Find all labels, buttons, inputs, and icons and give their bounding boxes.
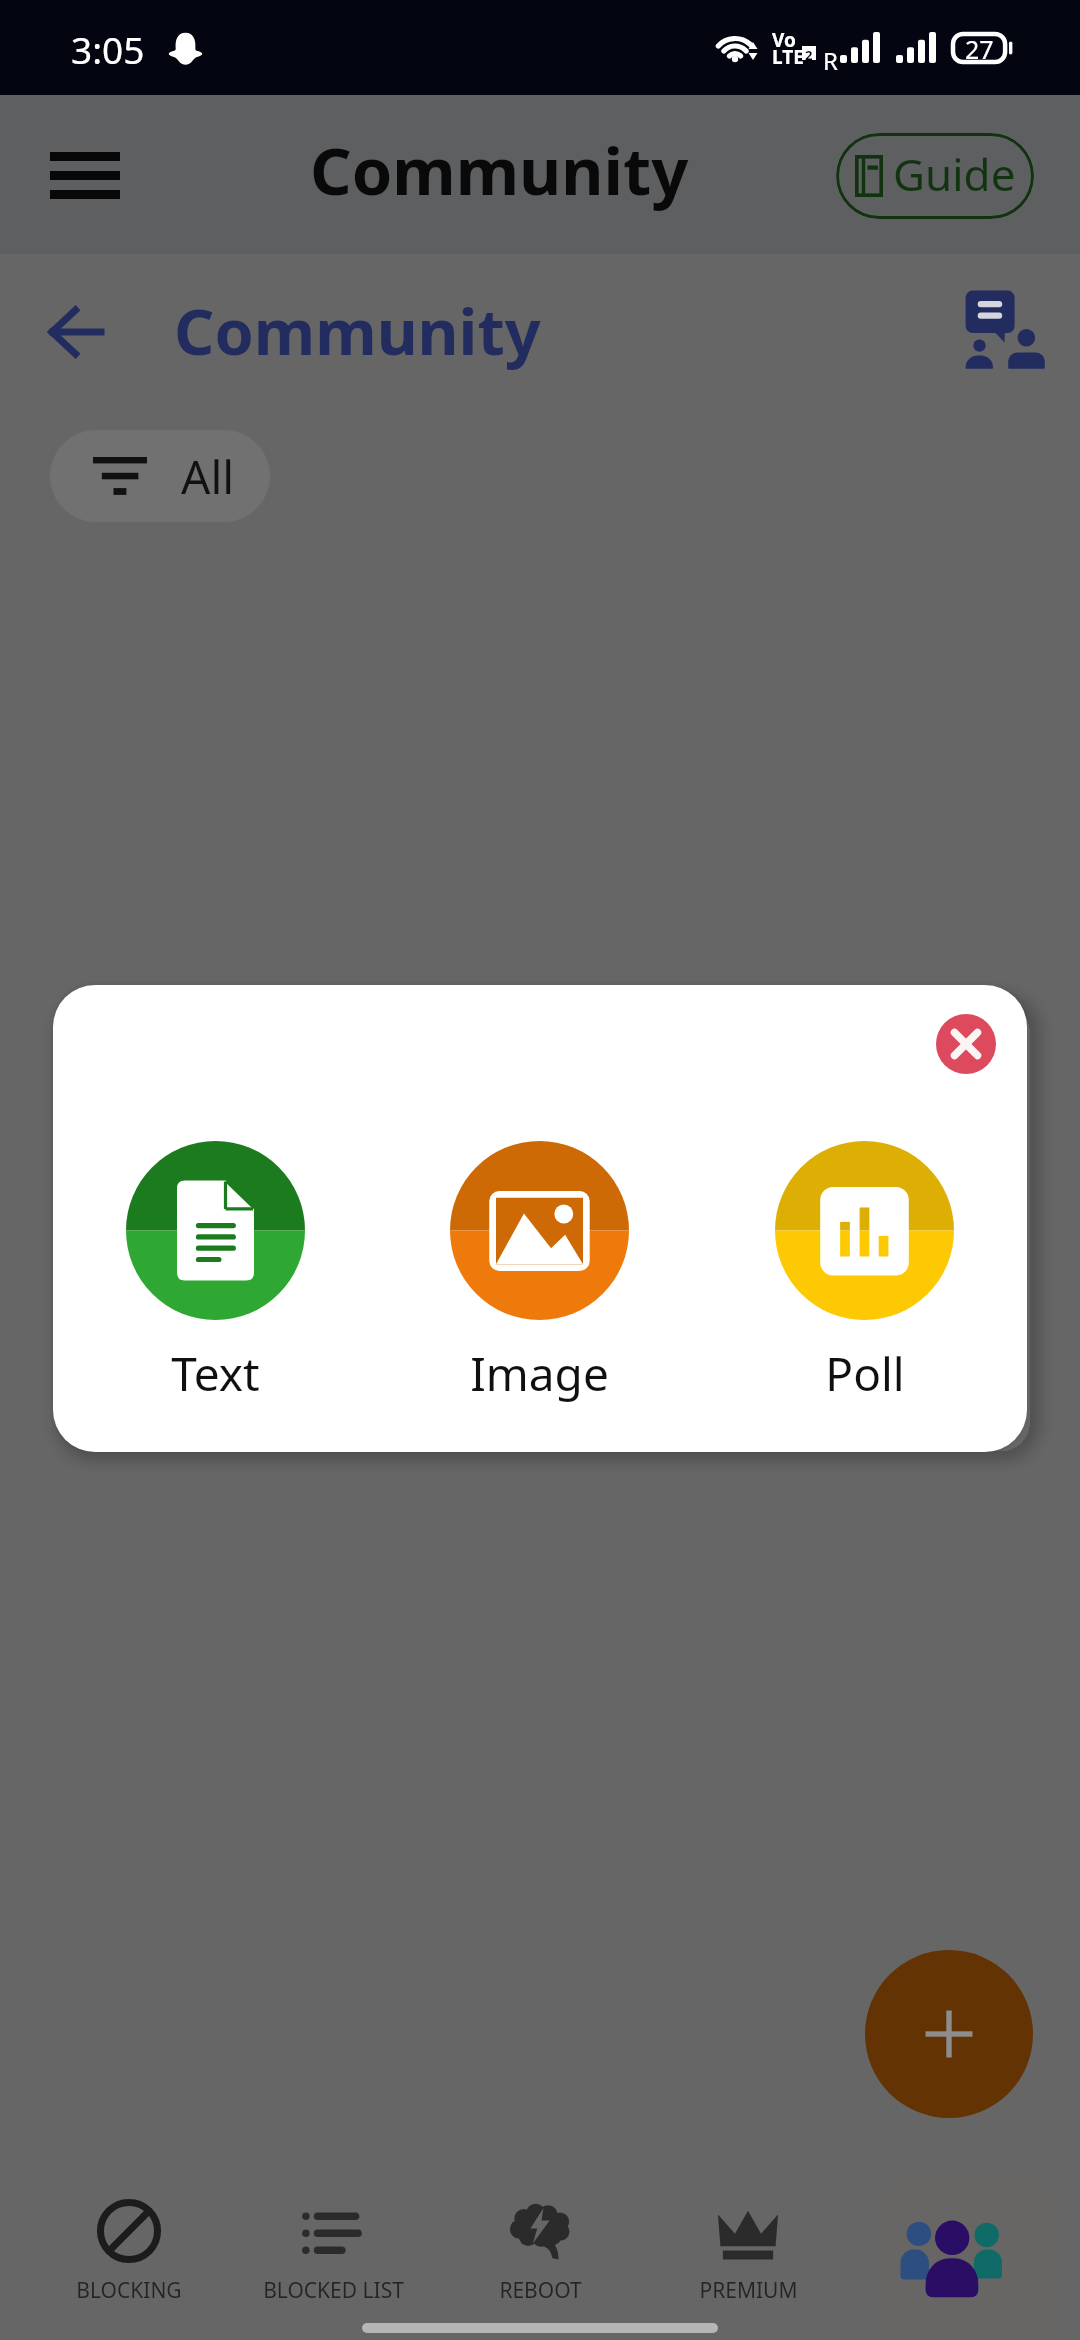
staticText: 27 [965,32,994,64]
button[interactable]: Close [936,1014,996,1074]
button[interactable]: Poll [702,1141,1027,1405]
staticText: Text [171,1342,260,1405]
button[interactable]: BLOCKED LIST [233,2130,433,2305]
staticText: R [823,44,838,77]
button[interactable]: REBOOT [440,2130,640,2305]
staticText: PREMIUM [699,2276,798,2305]
button[interactable]: Image [377,1141,702,1405]
staticText: BLOCKED LIST [263,2276,404,2305]
button[interactable]: Guide [836,133,1034,219]
button[interactable]: BLOCKING [29,2130,229,2305]
staticText: Image [470,1342,609,1405]
button[interactable]: Community [878,2179,1057,2336]
staticText: Community [174,288,541,374]
button[interactable]: Back [24,282,126,382]
button[interactable]: Menu [30,129,140,221]
staticText: All [181,445,235,508]
staticText: LTE [772,44,804,70]
staticText: BLOCKING [76,2276,182,2305]
staticText: Community [310,126,689,215]
button[interactable]: PREMIUM [648,2130,848,2305]
button[interactable]: All [50,430,270,522]
staticText: 3:05 [71,24,145,74]
staticText: REBOOT [499,2276,582,2305]
staticText: Poll [825,1342,905,1405]
button[interactable]: Add post [865,1950,1033,2118]
staticText: Vo [772,27,796,53]
staticText: Guide [893,144,1016,204]
button[interactable]: Community chat [955,270,1055,374]
staticText: 2 [805,46,813,60]
button[interactable]: Text [53,1141,377,1405]
